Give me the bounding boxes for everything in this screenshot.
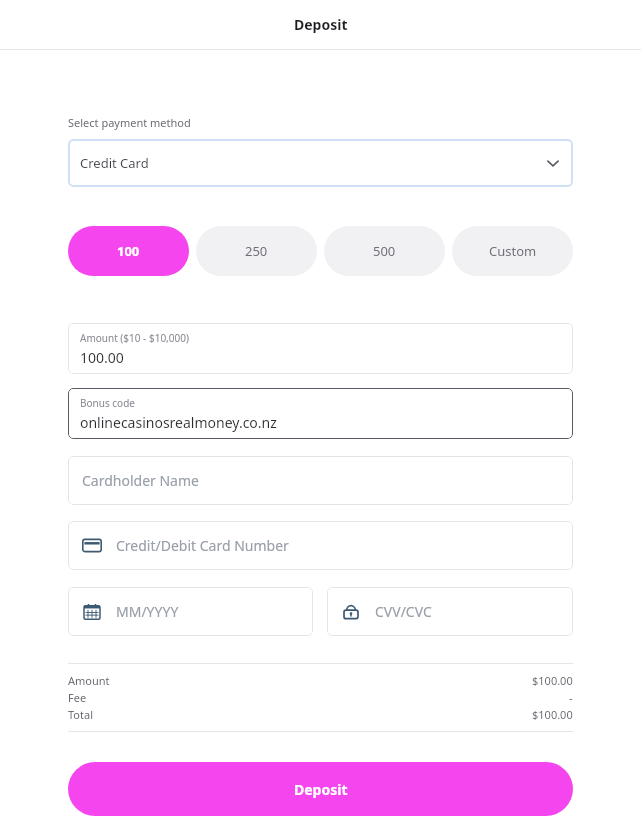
staticText: 500 <box>373 242 396 260</box>
staticText: Cardholder Name <box>82 471 199 490</box>
staticText: Credit/Debit Card Number <box>116 536 289 555</box>
button[interactable]: 250 <box>196 226 317 276</box>
staticText: Deposit <box>294 15 348 34</box>
staticText: Custom <box>489 242 537 260</box>
button[interactable]: Amount ($10 - $10,000) <box>68 323 573 374</box>
button[interactable]: 500 <box>324 226 445 276</box>
button[interactable]: Expiry date <box>68 587 313 636</box>
button[interactable]: Security code <box>327 587 573 636</box>
other: Expiry date <box>82 603 102 620</box>
button[interactable]: Card <box>68 521 573 570</box>
staticText: Bonus code <box>80 396 135 410</box>
staticText: Select payment method <box>68 115 191 130</box>
staticText: Amount ($10 - $10,000) <box>80 331 189 345</box>
staticText: MM/YYYY <box>116 602 179 621</box>
other: Card <box>82 537 102 554</box>
staticText: 250 <box>245 242 268 260</box>
staticText: Amount <box>68 673 110 688</box>
staticText: Fee <box>68 690 87 705</box>
other: Security code <box>341 603 361 620</box>
staticText: - <box>569 690 573 705</box>
staticText: $100.00 <box>532 673 573 688</box>
button[interactable]: Custom <box>452 226 573 276</box>
button[interactable]: Credit Card <box>68 139 573 187</box>
staticText: 100 <box>117 242 140 260</box>
staticText: Total <box>68 707 93 722</box>
button[interactable]: Deposit <box>68 762 573 816</box>
button[interactable]: 100 <box>68 226 189 276</box>
staticText: Deposit <box>294 780 348 799</box>
button[interactable]: Bonus code <box>68 388 573 439</box>
staticText: $100.00 <box>532 707 573 722</box>
staticText: onlinecasinosrealmoney.co.nz <box>80 413 277 432</box>
other: Expand payment methods <box>545 155 561 171</box>
staticText: 100.00 <box>80 348 124 367</box>
button[interactable]: Cardholder Name <box>68 456 573 505</box>
staticText: CVV/CVC <box>375 602 432 621</box>
staticText: Credit Card <box>80 154 149 172</box>
